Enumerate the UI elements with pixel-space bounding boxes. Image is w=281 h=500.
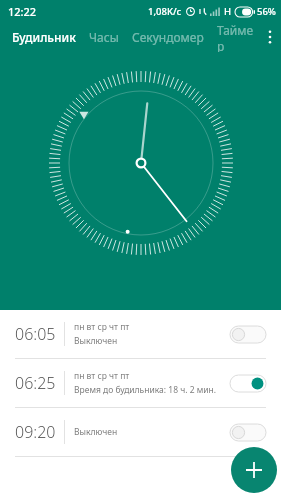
button[interactable]: Часы	[89, 22, 119, 52]
staticText: Будильник	[12, 29, 76, 45]
button[interactable]: Будильник	[12, 22, 76, 52]
button[interactable]: Alarm off	[228, 319, 268, 349]
button[interactable]: Add alarm	[231, 447, 277, 493]
staticText: H	[224, 5, 232, 18]
staticText: Часы	[89, 29, 119, 45]
button[interactable]: More options	[262, 24, 278, 50]
staticText: 09:20	[15, 421, 56, 443]
staticText: Время до будильника: 18 ч. 2 мин.	[74, 384, 217, 396]
staticText: 1,08K/c	[148, 5, 182, 18]
staticText: Выключен	[74, 335, 118, 347]
staticText: Секундомер	[132, 29, 204, 45]
button[interactable]: 09:20	[0, 408, 281, 456]
button[interactable]: Alarm on	[228, 368, 268, 398]
staticText: 12:22	[8, 4, 37, 19]
button[interactable]: 06:25	[0, 359, 281, 407]
button[interactable]: Секундомер	[132, 22, 204, 52]
button[interactable]: 06:05	[0, 310, 281, 358]
button[interactable]: Alarm off	[228, 417, 268, 447]
staticText: 06:25	[15, 372, 56, 394]
staticText: Выключен	[74, 426, 118, 438]
staticText: Таймер	[217, 22, 259, 52]
staticText: пн вт ср чт пт	[74, 321, 130, 333]
button[interactable]: Таймер	[217, 22, 259, 52]
staticText: пн вт ср чт пт	[74, 370, 130, 382]
staticText: 56%	[257, 5, 276, 18]
staticText: 06:05	[15, 323, 56, 345]
